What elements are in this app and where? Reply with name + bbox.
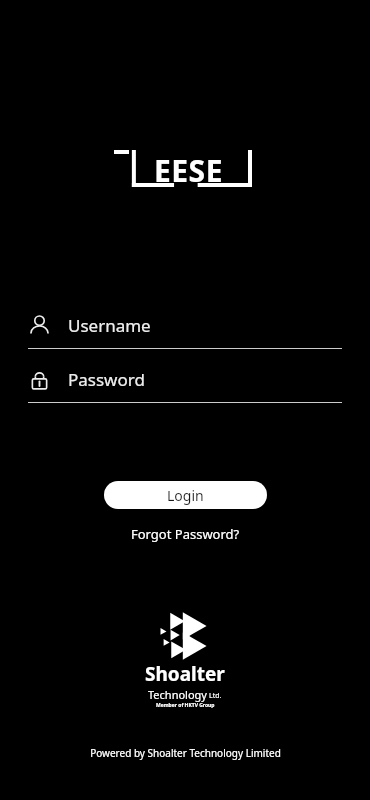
other: Password	[28, 368, 51, 391]
staticText: Login	[167, 486, 204, 505]
button[interactable]: Password	[28, 357, 342, 403]
staticText: Shoalter	[145, 661, 225, 687]
staticText: Password	[68, 368, 145, 391]
button[interactable]: Username	[28, 303, 342, 349]
staticText: EESE	[154, 150, 223, 183]
staticText: Forgot Password?	[131, 525, 240, 543]
staticText: Username	[68, 314, 151, 337]
other: Username	[28, 314, 51, 337]
button[interactable]: Login	[104, 481, 267, 509]
staticText: Technology	[148, 687, 207, 702]
staticText: Powered by Shoalter Technology Limited	[90, 746, 281, 760]
staticText: Member of HKTV Group	[156, 702, 215, 709]
staticText: Ltd.	[209, 691, 222, 701]
button[interactable]: Forgot Password?	[123, 521, 248, 547]
